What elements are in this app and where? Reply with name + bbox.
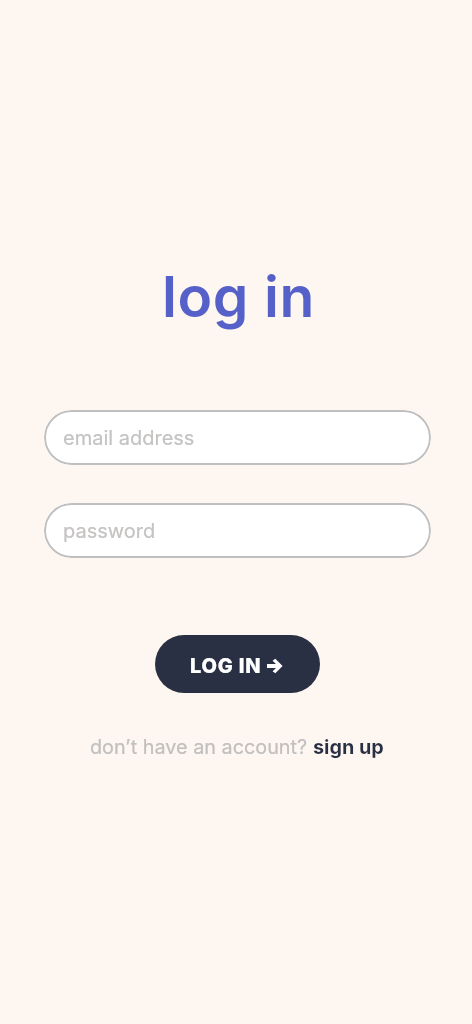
- button[interactable]: sign up: [313, 735, 384, 759]
- staticText: LOG IN: [190, 654, 262, 678]
- staticText: sign up: [313, 735, 384, 759]
- staticText: don’t have an account?: [90, 735, 313, 759]
- staticText: password: [63, 519, 156, 543]
- button[interactable]: password: [44, 503, 431, 558]
- button[interactable]: LOG IN: [155, 635, 320, 693]
- staticText: log in: [162, 262, 316, 331]
- button[interactable]: email address: [44, 410, 431, 465]
- other: Log in: [267, 659, 283, 673]
- staticText: email address: [63, 426, 195, 450]
